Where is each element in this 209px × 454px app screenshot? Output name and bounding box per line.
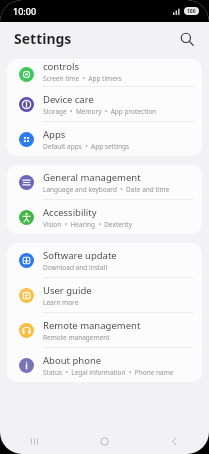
staticText: Storage • Memory • App protection [43, 107, 157, 116]
staticText: Status • Legal information • Phone name [43, 368, 174, 377]
staticText: Learn more [43, 298, 79, 307]
button[interactable]: Search [175, 27, 199, 51]
staticText: About phone [43, 354, 102, 367]
staticText: Remote management [43, 319, 141, 332]
button[interactable]: Recents [0, 429, 69, 454]
button[interactable]: Software update [7, 243, 202, 277]
staticText: Screen time • App timers [43, 74, 122, 83]
staticText: Apps [43, 128, 66, 141]
button[interactable]: General management [7, 165, 202, 199]
staticText: Default apps • App settings [43, 142, 130, 151]
staticText: controls [43, 60, 80, 73]
staticText: Vision • Hearing • Dexterity [43, 220, 132, 229]
staticText: Remote management [43, 333, 110, 342]
staticText: Download and install [43, 263, 108, 272]
button[interactable]: Remote management [7, 313, 202, 347]
staticText: Accessibility [43, 206, 97, 219]
staticText: Software update [43, 249, 117, 262]
staticText: Language and keyboard • Date and time [43, 185, 170, 194]
button[interactable]: User guide [7, 278, 202, 312]
staticText: Settings [14, 29, 72, 48]
button[interactable]: Home [69, 429, 139, 454]
button[interactable]: About phone [7, 348, 202, 382]
button[interactable]: Accessibility [7, 200, 202, 234]
staticText: General management [43, 171, 141, 184]
staticText: 10:00 [13, 5, 37, 17]
staticText: 100 [187, 8, 196, 15]
button[interactable]: Apps [7, 122, 202, 156]
button[interactable]: Back [139, 429, 209, 454]
staticText: Device care [43, 93, 94, 106]
button[interactable]: controls [7, 59, 202, 86]
button[interactable]: Device care [7, 87, 202, 121]
staticText: User guide [43, 284, 92, 297]
